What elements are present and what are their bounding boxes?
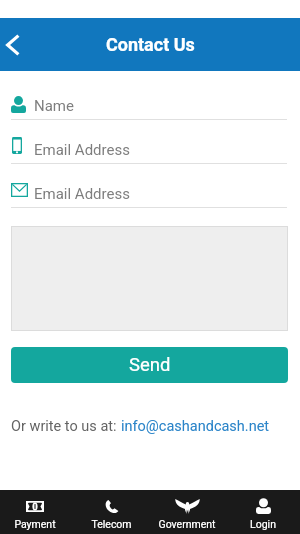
staticText: Email Address <box>34 141 130 159</box>
staticText: Or write to us at: <box>11 418 121 435</box>
staticText: Name <box>34 97 74 115</box>
button[interactable]: Send <box>11 347 288 383</box>
button[interactable]: Email Address <box>0 164 300 208</box>
staticText: Contact Us <box>106 34 195 55</box>
button[interactable]: Payment <box>0 490 73 534</box>
staticText: Telecom <box>91 518 132 530</box>
staticText: Email Address <box>34 185 130 203</box>
button[interactable]: Telecom <box>73 490 149 534</box>
staticText: Payment <box>14 518 56 530</box>
staticText: Government <box>158 518 216 530</box>
staticText: Login <box>250 518 276 530</box>
button[interactable]: Login <box>225 490 300 534</box>
button[interactable]: Name <box>0 76 300 120</box>
button[interactable]: Government <box>149 490 225 534</box>
button[interactable]: Email Address <box>0 120 300 164</box>
staticText: Send <box>129 354 171 376</box>
button[interactable]: info@cashandcash.net <box>121 418 270 435</box>
button[interactable]: Back <box>0 23 28 67</box>
